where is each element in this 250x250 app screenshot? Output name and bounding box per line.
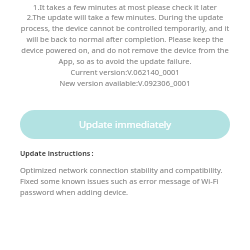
staticText: 1.It takes a few minutes at most please … xyxy=(0,2,250,89)
button[interactable]: Update immediately xyxy=(20,110,230,139)
staticText: Update instructions : xyxy=(20,148,94,158)
staticText: Update immediately xyxy=(79,118,172,131)
staticText: Optimized network connection stability a… xyxy=(20,165,223,197)
